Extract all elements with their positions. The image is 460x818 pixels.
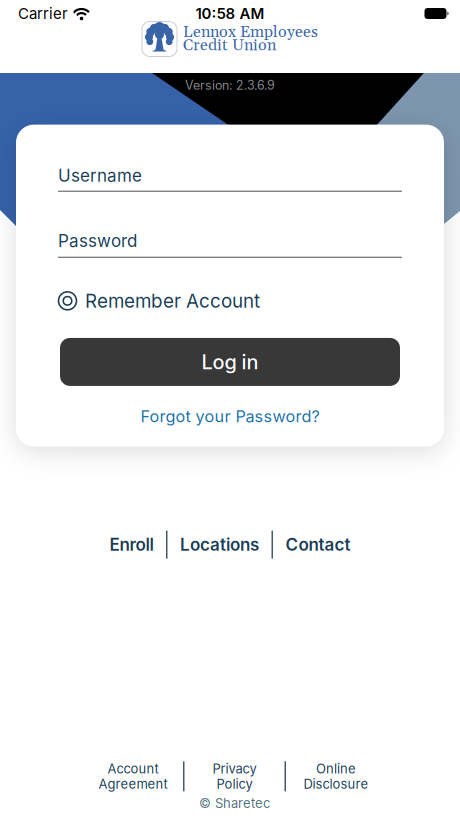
staticText: Version: 2.3.6.9 [185, 78, 275, 93]
button[interactable]: Log in [60, 338, 400, 386]
button[interactable]: Contact [285, 535, 350, 555]
staticText: Locations [180, 535, 259, 555]
staticText: Disclosure [303, 776, 368, 792]
staticText: Policy [216, 776, 252, 792]
staticText: 10:58 AM [195, 5, 264, 22]
staticText: Credit Union [183, 39, 276, 52]
button[interactable]: Online [286, 761, 386, 792]
staticText: © Sharetec [199, 796, 270, 811]
staticText: Lennox Employees [183, 26, 318, 39]
staticText: Enroll [109, 535, 153, 555]
staticText: Privacy [212, 761, 256, 776]
button[interactable]: Account [83, 761, 183, 792]
staticText: Forgot your Password? [140, 407, 319, 426]
staticText: Carrier [18, 5, 68, 22]
button[interactable]: Enroll [109, 535, 153, 555]
staticText: Account [107, 761, 158, 776]
staticText: Online [316, 761, 356, 776]
button[interactable]: Username [58, 166, 402, 192]
button[interactable]: Locations [180, 535, 259, 555]
staticText: Remember Account [85, 290, 260, 312]
staticText: Password [58, 231, 137, 251]
staticText: Username [58, 166, 142, 186]
button[interactable]: Password [58, 231, 402, 258]
staticText: Agreement [98, 776, 167, 792]
button[interactable]: Privacy [184, 761, 284, 792]
button[interactable]: Forgot your Password? [140, 407, 319, 426]
staticText: Contact [285, 535, 350, 555]
button[interactable]: Remember Account [58, 290, 260, 312]
staticText: Log in [201, 350, 258, 374]
